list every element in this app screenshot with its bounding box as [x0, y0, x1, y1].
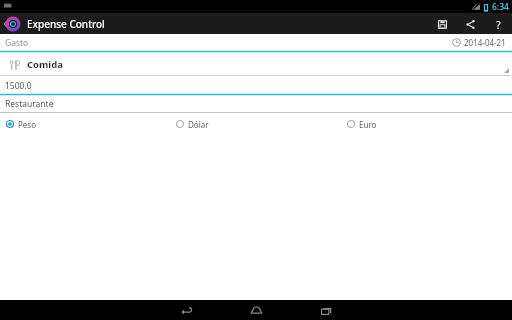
- staticText: 2014-04-21: [464, 37, 506, 48]
- staticText: Euro: [359, 119, 377, 130]
- button[interactable]: Euro: [341, 114, 512, 134]
- staticText: 6:34: [492, 1, 509, 13]
- button[interactable]: Back: [164, 300, 208, 320]
- button[interactable]: Recents: [304, 300, 348, 320]
- staticText: ?: [496, 17, 501, 32]
- button[interactable]: Save: [434, 16, 450, 32]
- button[interactable]: ?: [490, 16, 506, 32]
- staticText: Restaurante: [5, 98, 54, 110]
- staticText: Dólar: [188, 119, 209, 130]
- button[interactable]: Dólar: [170, 114, 341, 134]
- button[interactable]: Up: [3, 14, 23, 34]
- staticText: Gasto: [5, 37, 29, 49]
- button[interactable]: Home: [234, 300, 278, 320]
- button[interactable]: Peso: [0, 114, 170, 134]
- staticText: Comida: [27, 58, 63, 71]
- button[interactable]: Share: [462, 16, 478, 32]
- button[interactable]: Comida: [0, 53, 512, 75]
- button[interactable]: Gasto: [0, 34, 512, 51]
- button[interactable]: 1500.0: [0, 77, 512, 94]
- staticText: Expense Control: [27, 17, 105, 31]
- button[interactable]: Restaurante: [0, 96, 512, 112]
- staticText: Peso: [18, 119, 37, 130]
- staticText: 1500.0: [5, 80, 32, 92]
